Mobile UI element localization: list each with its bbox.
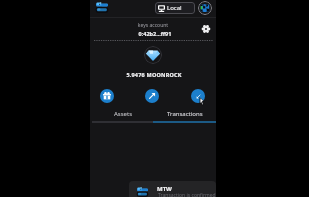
button[interactable]: Receive: [191, 89, 205, 103]
button[interactable]: Send: [145, 89, 159, 103]
button[interactable]: MTW: [129, 181, 216, 197]
staticText: Assets: [114, 110, 133, 118]
button[interactable]: Account: [198, 1, 212, 15]
button[interactable]: Buy: [100, 89, 114, 103]
staticText: MTW: [157, 185, 172, 193]
button[interactable]: Local: [155, 2, 195, 14]
staticText: 5.9476 MOONROCK: [91, 71, 217, 78]
staticText: 0:42b2...ff91: [92, 30, 218, 37]
button[interactable]: Settings: [199, 22, 212, 35]
staticText: Transaction is confirmed: [158, 192, 216, 197]
staticText: Transactions: [167, 110, 203, 118]
button[interactable]: Assets: [92, 107, 154, 120]
button[interactable]: Transactions: [154, 107, 216, 120]
staticText: keys account: [90, 22, 216, 29]
staticText: Local: [167, 4, 182, 12]
